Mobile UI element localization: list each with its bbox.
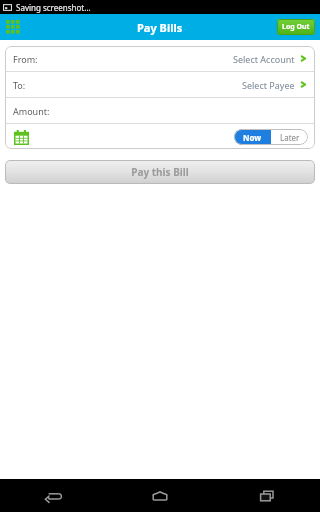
staticText: To: (13, 79, 26, 91)
button[interactable]: Home (106, 479, 213, 512)
staticText: Later (280, 132, 300, 143)
button[interactable]: From: (5, 46, 315, 71)
button[interactable]: Log Out (277, 19, 315, 35)
button[interactable]: Back (0, 479, 106, 512)
staticText: Now (243, 132, 262, 143)
button[interactable]: Now (234, 129, 271, 145)
button[interactable]: To: (5, 72, 315, 97)
button[interactable]: Recents (213, 479, 320, 512)
button[interactable]: Pick date (12, 128, 30, 146)
button[interactable]: Later (271, 129, 308, 145)
staticText: Select Payee (242, 79, 295, 91)
button[interactable]: Amount: (5, 98, 315, 123)
button[interactable]: Menu (3, 17, 23, 37)
staticText: Select Account (233, 53, 295, 65)
staticText: Saving screenshot... (16, 2, 91, 13)
staticText: From: (13, 53, 38, 65)
staticText: Pay this Bill (131, 165, 189, 179)
staticText: Log Out (282, 22, 310, 32)
staticText: Amount: (13, 105, 50, 117)
button[interactable]: Pay this Bill (5, 160, 315, 184)
staticText: Pay Bills (137, 20, 183, 35)
